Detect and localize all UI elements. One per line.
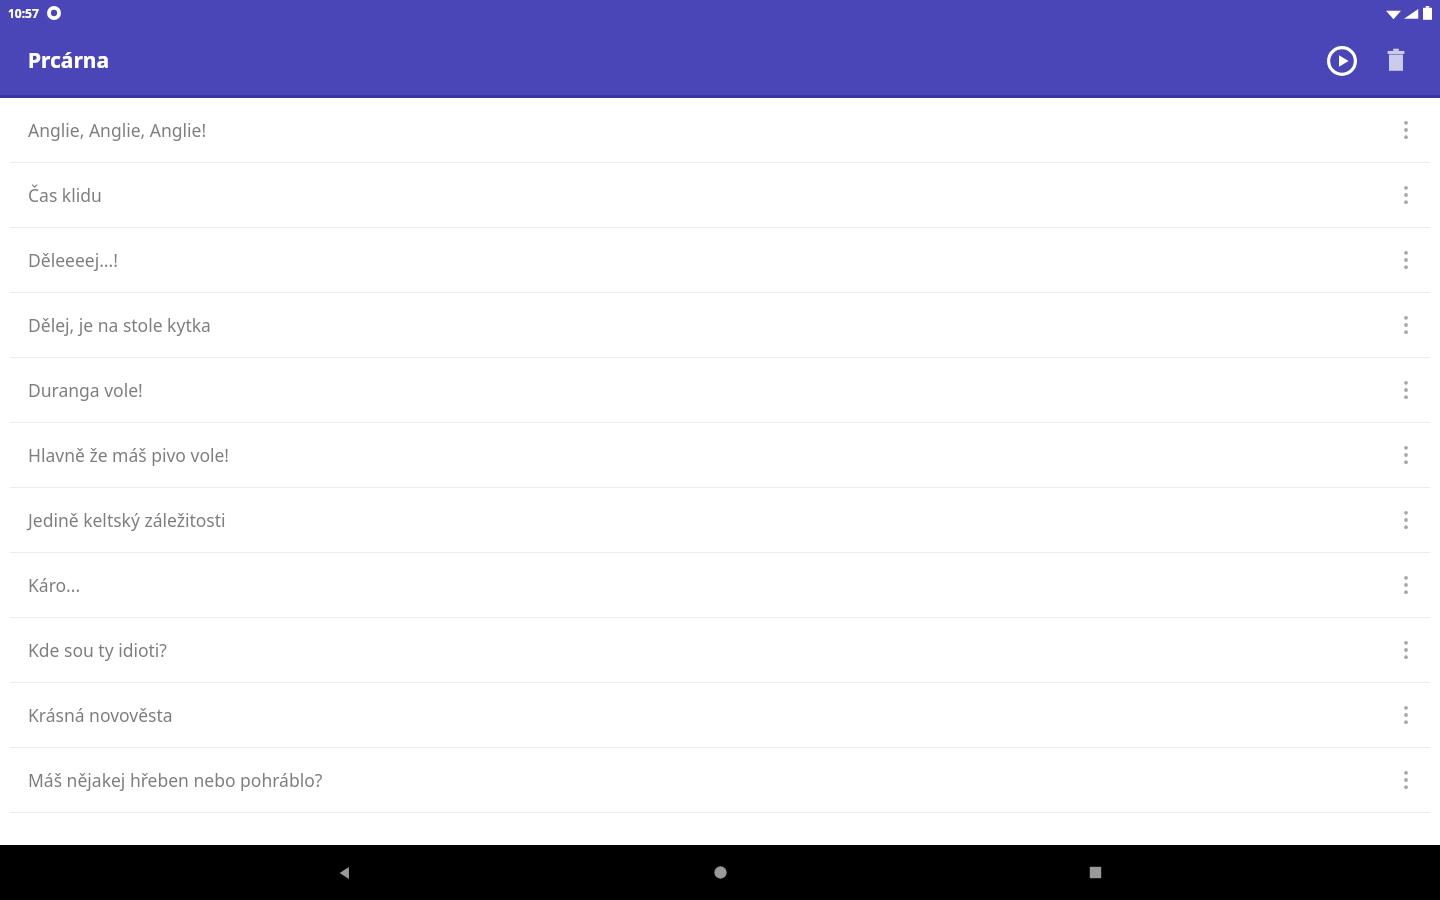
staticText: Děleeeej...! xyxy=(28,248,1382,272)
button[interactable]: Play xyxy=(1318,37,1366,85)
button[interactable]: Děleeeej...! xyxy=(0,228,1440,292)
staticText: Prcárna xyxy=(28,46,110,75)
button[interactable]: More options xyxy=(1382,626,1430,674)
button[interactable]: Jedině keltský záležitosti xyxy=(0,488,1440,552)
button[interactable]: Kde sou ty idioti? xyxy=(0,618,1440,682)
button[interactable]: Káro... xyxy=(0,553,1440,617)
button[interactable]: More options xyxy=(1382,366,1430,414)
staticText: Čas klidu xyxy=(28,183,1382,207)
button[interactable]: More options xyxy=(1382,236,1430,284)
staticText: Hlavně že máš pivo vole! xyxy=(28,443,1382,467)
button[interactable]: More options xyxy=(1382,431,1430,479)
button[interactable]: More options xyxy=(1382,106,1430,154)
button[interactable]: Čas klidu xyxy=(0,163,1440,227)
staticText: Káro... xyxy=(28,573,1382,597)
staticText: 10:57 xyxy=(8,5,39,21)
button[interactable]: More options xyxy=(1382,561,1430,609)
button[interactable]: Duranga vole! xyxy=(0,358,1440,422)
staticText: Jedině keltský záležitosti xyxy=(28,508,1382,532)
button[interactable]: Back xyxy=(315,845,375,900)
staticText: Anglie, Anglie, Anglie! xyxy=(28,118,1382,142)
button[interactable]: Krásná novověsta xyxy=(0,683,1440,747)
staticText: Krásná novověsta xyxy=(28,703,1382,727)
button[interactable]: Delete all xyxy=(1372,37,1420,85)
button[interactable]: More options xyxy=(1382,691,1430,739)
staticText: Kde sou ty idioti? xyxy=(28,638,1382,662)
button[interactable]: Máš nějakej hřeben nebo pohráblo? xyxy=(0,748,1440,812)
button[interactable]: More options xyxy=(1382,171,1430,219)
button[interactable]: Home xyxy=(690,845,750,900)
staticText: Dělej, je na stole kytka xyxy=(28,313,1382,337)
staticText: Duranga vole! xyxy=(28,378,1382,402)
button[interactable]: Anglie, Anglie, Anglie! xyxy=(0,98,1440,162)
button[interactable]: Hlavně že máš pivo vole! xyxy=(0,423,1440,487)
staticText: Máš nějakej hřeben nebo pohráblo? xyxy=(28,768,1382,792)
button[interactable]: Recents xyxy=(1065,845,1125,900)
button[interactable]: More options xyxy=(1382,756,1430,804)
button[interactable]: More options xyxy=(1382,301,1430,349)
button[interactable]: More options xyxy=(1382,496,1430,544)
button[interactable]: Dělej, je na stole kytka xyxy=(0,293,1440,357)
